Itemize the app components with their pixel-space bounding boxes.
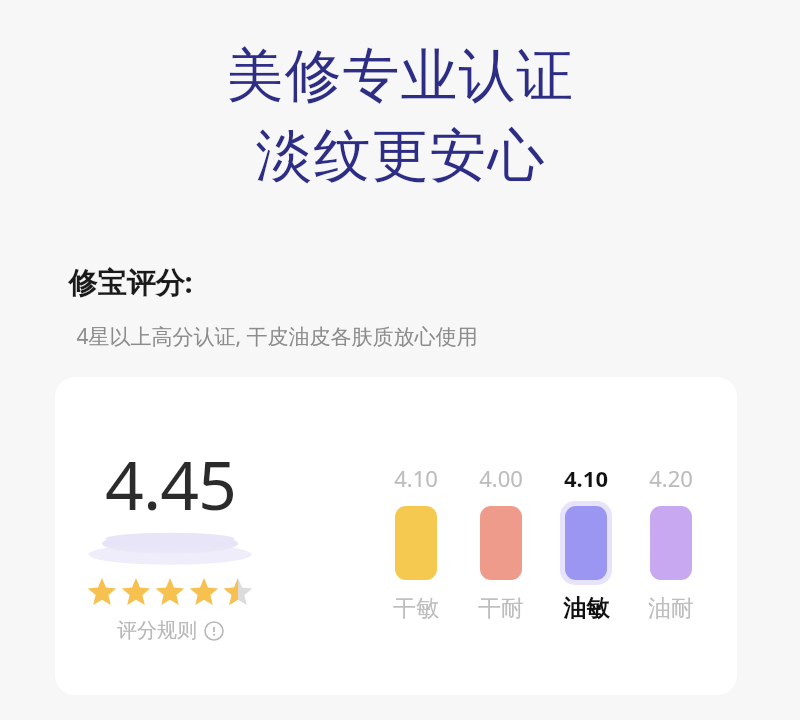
button[interactable]: 4.20 (628, 463, 713, 623)
staticText: 淡纹更安心 (255, 120, 545, 192)
button[interactable]: 评分规则 (117, 618, 224, 643)
button[interactable]: 4.45 (55, 377, 737, 695)
staticText: 4.20 (649, 463, 693, 493)
staticText: 4.45 (105, 437, 236, 530)
staticText: 修宝评分: (68, 262, 193, 302)
button[interactable]: 4.45 (85, 437, 335, 643)
staticText: 干耐 (478, 594, 524, 623)
staticText: 4.00 (479, 463, 523, 493)
staticText: 油耐 (648, 594, 694, 623)
staticText: 评分规则 (117, 618, 197, 643)
staticText: 干敏 (393, 594, 439, 623)
staticText: 4.10 (564, 463, 608, 493)
staticText: 4星以上高分认证, 干皮油皮各肤质放心使用 (76, 322, 478, 351)
staticText: 油敏 (563, 594, 609, 623)
staticText: 美修专业认证 (226, 40, 574, 112)
button[interactable]: 4.10 (543, 463, 628, 623)
button[interactable]: 4.10 (373, 463, 458, 623)
other: Scoring rules info (204, 621, 224, 641)
button[interactable]: 4.00 (458, 463, 543, 623)
staticText: 4.10 (394, 463, 438, 493)
